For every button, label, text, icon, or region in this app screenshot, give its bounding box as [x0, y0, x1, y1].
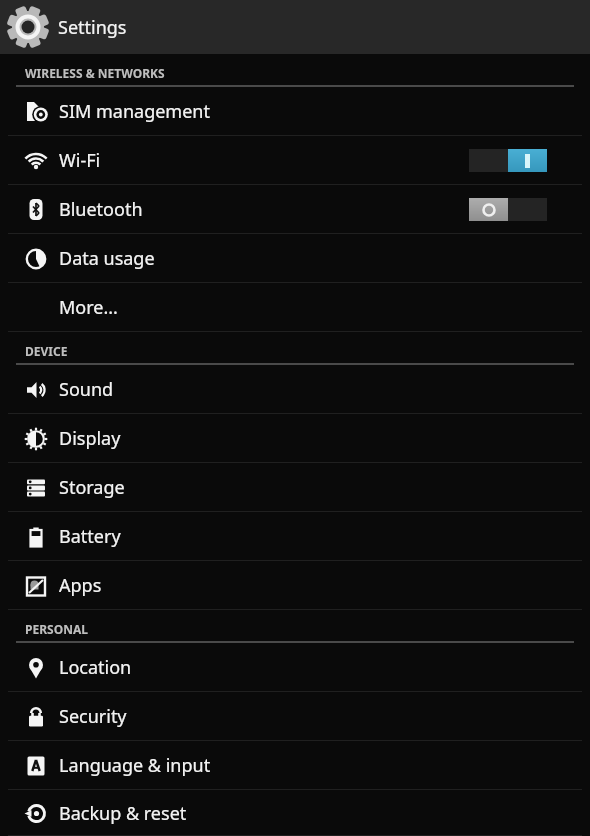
button[interactable]: Data usage	[0, 234, 590, 283]
staticText: Apps	[59, 573, 102, 598]
button[interactable]: Sound	[0, 365, 590, 414]
button[interactable]: Language & input	[0, 741, 590, 790]
staticText: WIRELESS & NETWORKS	[25, 65, 165, 81]
staticText: Language & input	[59, 753, 211, 778]
button[interactable]: More...	[0, 283, 590, 332]
staticText: Settings	[58, 15, 127, 40]
staticText: SIM management	[59, 99, 210, 124]
staticText: Display	[59, 426, 121, 451]
button[interactable]: Wi-Fi	[0, 136, 590, 185]
button[interactable]: Bluetooth	[0, 185, 590, 234]
button[interactable]: Display	[0, 414, 590, 463]
button[interactable]: Settings	[0, 0, 590, 54]
staticText: DEVICE	[25, 343, 68, 359]
button[interactable]: Security	[0, 692, 590, 741]
staticText: Sound	[59, 377, 114, 402]
staticText: Bluetooth	[59, 197, 143, 222]
staticText: Security	[59, 704, 127, 729]
staticText: More...	[59, 295, 118, 320]
staticText: Backup & reset	[59, 801, 187, 826]
button[interactable]: Backup & reset	[0, 790, 590, 836]
staticText: Storage	[59, 475, 125, 500]
button[interactable]	[469, 149, 547, 172]
button[interactable]: Storage	[0, 463, 590, 512]
staticText: PERSONAL	[25, 621, 88, 637]
button[interactable]: Apps	[0, 561, 590, 610]
staticText: Battery	[59, 524, 121, 549]
button[interactable]: Location	[0, 643, 590, 692]
staticText: Data usage	[59, 246, 155, 271]
staticText: Wi-Fi	[59, 148, 101, 173]
button[interactable]: Battery	[0, 512, 590, 561]
staticText: Location	[59, 655, 132, 680]
button[interactable]: SIM management	[0, 87, 590, 136]
button[interactable]	[469, 198, 547, 221]
